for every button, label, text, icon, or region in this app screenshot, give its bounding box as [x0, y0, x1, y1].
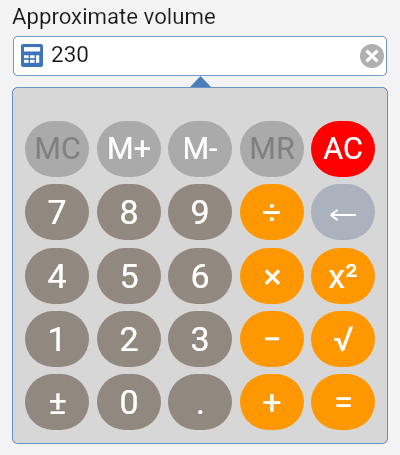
button[interactable]: Minus [240, 311, 304, 367]
button[interactable]: 2 [97, 311, 161, 367]
button[interactable]: MC [25, 121, 89, 177]
staticText: 3 [190, 319, 210, 359]
button[interactable]: 5 [97, 248, 161, 304]
staticText: M- [182, 131, 218, 167]
staticText: − [262, 319, 282, 359]
staticText: × [263, 256, 282, 296]
staticText: 5 [119, 256, 139, 296]
button[interactable]: 230 [13, 36, 387, 76]
staticText: 7 [47, 192, 67, 232]
staticText: + [262, 382, 282, 422]
staticText: AC [323, 131, 363, 167]
button[interactable]: M+ [97, 121, 161, 177]
button[interactable]: Plus [240, 374, 304, 430]
staticText: . [196, 382, 205, 422]
staticText: M+ [107, 131, 151, 167]
button[interactable]: 9 [168, 184, 232, 240]
staticText: 230 [51, 41, 89, 67]
button[interactable]: 1 [25, 311, 89, 367]
staticText: MR [249, 131, 295, 167]
button[interactable]: 8 [97, 184, 161, 240]
staticText: MC [34, 131, 81, 167]
staticText: ÷ [262, 192, 282, 232]
staticText: 0 [119, 382, 139, 422]
button[interactable]: . [168, 374, 232, 430]
button[interactable]: MR [240, 121, 304, 177]
staticText: 6 [190, 256, 210, 296]
button[interactable]: Square [311, 248, 375, 304]
staticText: 9 [190, 192, 210, 232]
staticText: = [334, 382, 353, 422]
button[interactable]: 6 [168, 248, 232, 304]
staticText: √ [333, 319, 354, 359]
button[interactable]: AC [311, 121, 375, 177]
button[interactable]: Square root [311, 311, 375, 367]
staticText: Approximate volume [12, 3, 216, 29]
staticText: 2 [119, 319, 139, 359]
staticText: 8 [119, 192, 139, 232]
button[interactable]: Backspace [311, 184, 375, 240]
button[interactable]: 0 [97, 374, 161, 430]
button[interactable]: Clear text [360, 44, 384, 68]
button[interactable]: Plus minus [25, 374, 89, 430]
button[interactable]: Equals [311, 374, 375, 430]
staticText: x² [328, 256, 358, 296]
button[interactable]: 7 [25, 184, 89, 240]
staticText: 4 [47, 256, 67, 296]
button[interactable]: M- [168, 121, 232, 177]
button[interactable]: 4 [25, 248, 89, 304]
button[interactable]: Divide [240, 184, 304, 240]
staticText: 1 [47, 319, 67, 359]
staticText: ± [48, 382, 67, 422]
button[interactable]: 3 [168, 311, 232, 367]
button[interactable]: Multiply [240, 248, 304, 304]
